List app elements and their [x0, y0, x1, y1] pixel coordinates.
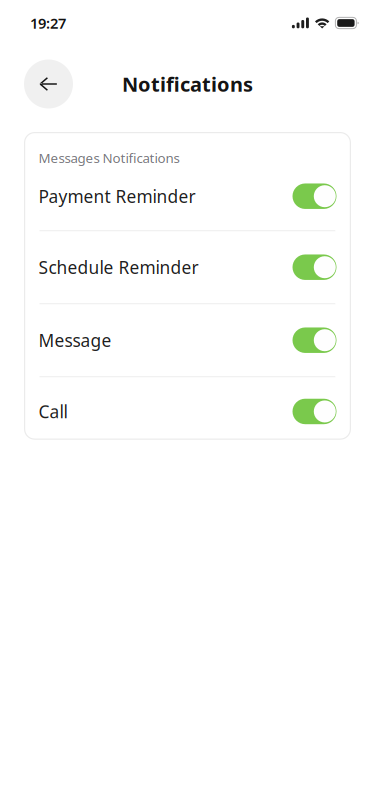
staticText: Messages Notifications — [38, 149, 179, 167]
button[interactable]: Back — [24, 59, 73, 108]
button[interactable]: Payment Reminder — [24, 167, 351, 230]
staticText: Payment Reminder — [38, 185, 195, 208]
staticText: Message — [38, 329, 111, 352]
staticText: Schedule Reminder — [38, 256, 198, 279]
staticText: Call — [38, 400, 67, 423]
staticText: Notifications — [122, 71, 253, 97]
button[interactable]: Call — [24, 377, 351, 440]
button[interactable]: Message — [24, 304, 351, 376]
staticText: 19:27 — [30, 13, 66, 33]
button[interactable]: Schedule Reminder — [24, 231, 351, 303]
